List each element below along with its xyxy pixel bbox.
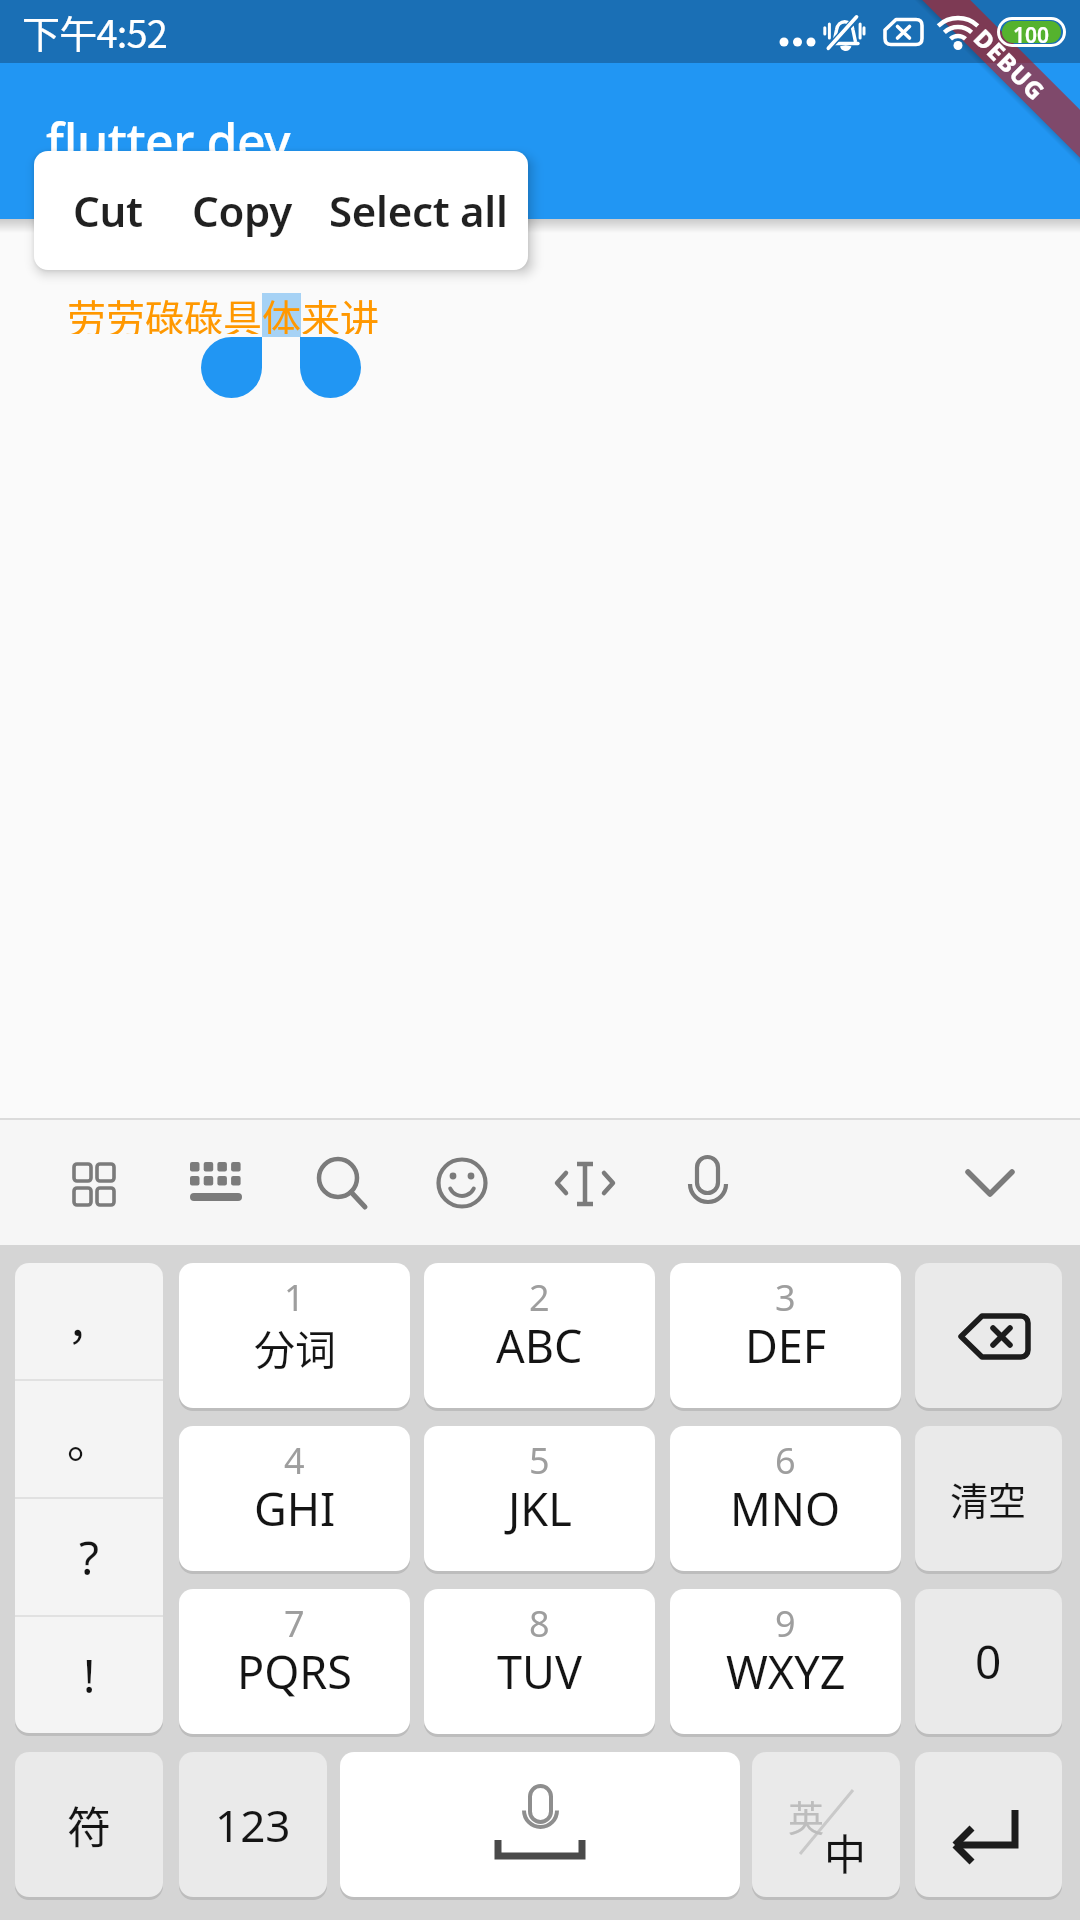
button[interactable]	[662, 1138, 752, 1228]
button[interactable]	[945, 1138, 1035, 1228]
button[interactable]	[293, 1138, 383, 1228]
button[interactable]: 。	[15, 1381, 163, 1497]
staticText: ABC	[496, 1315, 583, 1376]
staticText: 6	[775, 1436, 796, 1485]
staticText: 0	[975, 1630, 1002, 1693]
staticText: 5	[529, 1436, 550, 1485]
button[interactable]: 0	[915, 1589, 1062, 1734]
staticText: !	[83, 1644, 96, 1707]
staticText: 中	[824, 1821, 867, 1882]
button[interactable]: 清空	[915, 1426, 1062, 1571]
staticText: ，	[67, 1289, 111, 1353]
staticText: 8	[529, 1599, 550, 1648]
button[interactable]: 9	[670, 1589, 901, 1734]
button[interactable]	[915, 1752, 1062, 1897]
button[interactable]: 2	[424, 1263, 655, 1408]
button[interactable]: Select all	[329, 151, 508, 270]
staticText: MNO	[730, 1478, 841, 1539]
staticText: 分词	[254, 1317, 336, 1376]
staticText: 7	[284, 1599, 305, 1648]
staticText: flutter dev	[46, 107, 290, 175]
staticText: ?	[79, 1526, 99, 1589]
staticText: 9	[775, 1599, 796, 1648]
button[interactable]	[172, 1138, 262, 1228]
staticText: TUV	[497, 1641, 582, 1702]
staticText: 100	[1013, 21, 1050, 43]
staticText: 劳劳碌碌具体来讲	[67, 288, 380, 334]
button[interactable]: 3	[670, 1263, 901, 1408]
button[interactable]: 英	[752, 1752, 900, 1897]
staticText: 下午4:52	[22, 4, 168, 59]
button[interactable]: 4	[179, 1426, 410, 1571]
button[interactable]	[915, 1263, 1062, 1408]
staticText: 清空	[950, 1471, 1027, 1526]
staticText: 1	[284, 1273, 305, 1322]
staticText: 123	[215, 1795, 291, 1855]
button[interactable]: !	[15, 1617, 163, 1733]
staticText: Cut	[73, 182, 143, 239]
button[interactable]: 1	[179, 1263, 410, 1408]
button[interactable]: 6	[670, 1426, 901, 1571]
button[interactable]: 5	[424, 1426, 655, 1571]
button[interactable]	[340, 1752, 740, 1897]
staticText: 符	[67, 1793, 111, 1857]
button[interactable]	[48, 1138, 138, 1228]
staticText: GHI	[254, 1478, 336, 1539]
button[interactable]: 符	[15, 1752, 163, 1897]
staticText: 4	[284, 1436, 305, 1485]
button[interactable]: 8	[424, 1589, 655, 1734]
button[interactable]: ，	[15, 1263, 163, 1733]
staticText: Select all	[329, 182, 508, 239]
staticText: DEBUG	[967, 21, 1053, 108]
button[interactable]: Cut	[73, 151, 143, 270]
staticText: Copy	[192, 182, 292, 239]
staticText: PQRS	[237, 1641, 353, 1702]
staticText: 2	[529, 1273, 550, 1322]
staticText: 。	[67, 1407, 111, 1471]
button[interactable]: ?	[15, 1499, 163, 1615]
button[interactable]	[540, 1138, 630, 1228]
button[interactable]: 7	[179, 1589, 410, 1734]
button[interactable]: Copy	[192, 151, 292, 270]
staticText: 3	[775, 1273, 796, 1322]
staticText: WXYZ	[726, 1641, 846, 1702]
button[interactable]: ，	[15, 1263, 163, 1379]
staticText: DEF	[745, 1315, 827, 1376]
staticText: JKL	[508, 1478, 572, 1539]
button[interactable]: 123	[179, 1752, 327, 1897]
button[interactable]	[417, 1138, 507, 1228]
staticText: 英	[788, 1790, 825, 1842]
